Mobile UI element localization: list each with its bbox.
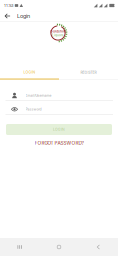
button[interactable]: FORGOT PASSWORD? <box>6 139 112 147</box>
button[interactable]: Home <box>39 238 79 256</box>
staticText: Liquors <box>52 33 64 37</box>
button[interactable]: Back <box>1 10 14 22</box>
button[interactable]: Password <box>5 104 113 115</box>
staticText: FORGOT PASSWORD? <box>34 140 83 146</box>
staticText: LOGIN <box>23 70 35 74</box>
button[interactable]: Recent apps <box>0 238 39 256</box>
button[interactable]: REGISTER <box>59 66 118 79</box>
staticText: Password <box>25 107 41 111</box>
button[interactable]: LOGIN <box>6 124 112 135</box>
staticText: Login <box>17 13 30 19</box>
button[interactable]: LOGIN <box>0 66 59 79</box>
staticText: 11:53 <box>4 3 13 8</box>
button[interactable]: Back <box>79 238 118 256</box>
button[interactable]: Email/Username <box>5 90 113 101</box>
staticText: LOGIN <box>53 127 65 132</box>
staticText: Email/Username <box>25 93 51 97</box>
staticText: Goldshire <box>50 29 66 33</box>
staticText: REGISTER <box>80 70 96 75</box>
